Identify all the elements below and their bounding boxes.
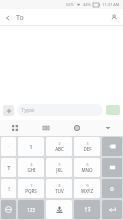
staticText: 9 <box>86 183 89 188</box>
button[interactable]: T <box>1 158 16 177</box>
staticText: 11:37 AM <box>102 2 120 7</box>
staticText: DEF <box>83 146 92 152</box>
staticText: PQRS <box>25 188 37 194</box>
button[interactable]: box <box>102 158 122 177</box>
staticText: 44% <box>83 2 91 7</box>
staticText: ! <box>8 185 10 193</box>
staticText: 4 <box>30 162 33 167</box>
staticText: 1 <box>29 143 33 151</box>
staticText: Type <box>21 106 35 114</box>
button[interactable]: 2 <box>46 137 72 156</box>
staticText: 8 <box>58 183 61 188</box>
button[interactable]: Settings <box>61 120 92 136</box>
button[interactable]: Collapse <box>92 120 123 136</box>
staticText: 0 <box>110 185 114 193</box>
button[interactable]: 4 <box>18 158 44 177</box>
button[interactable]: Add attachment <box>3 105 14 116</box>
staticText: JKL <box>56 167 63 173</box>
button[interactable]: Type <box>17 104 103 116</box>
staticText: MNO <box>81 167 93 173</box>
button[interactable]: del <box>102 137 122 156</box>
button[interactable]: 7 <box>18 179 44 198</box>
button[interactable]: Add contact <box>106 9 123 26</box>
staticText: 5 <box>58 162 61 167</box>
button[interactable]: ! <box>1 179 16 198</box>
staticText: 52% <box>66 2 74 7</box>
button[interactable]: 123 <box>18 200 44 219</box>
button[interactable]: 3 <box>74 137 100 156</box>
button[interactable]: 9 <box>74 179 100 198</box>
staticText: ABC <box>55 146 64 152</box>
staticText: To <box>16 13 24 23</box>
staticText: GHI <box>27 167 36 173</box>
staticText: 123 <box>27 207 35 213</box>
button[interactable]: 6 <box>74 158 100 177</box>
button[interactable]: 1 <box>18 137 44 156</box>
button[interactable]: enter <box>102 200 122 219</box>
button[interactable]: 5 <box>46 158 72 177</box>
staticText: 2 <box>58 141 61 146</box>
button[interactable]: Clipboard <box>30 120 61 136</box>
staticText: 7 <box>30 183 33 188</box>
button[interactable]: globe <box>1 200 16 219</box>
button[interactable]: 0 <box>102 179 122 198</box>
staticText: 3 <box>86 141 89 146</box>
button[interactable]: Apps <box>0 120 30 136</box>
staticText: WXYZ <box>81 188 93 194</box>
staticText: · <box>8 144 9 149</box>
button[interactable]: Back <box>0 10 16 26</box>
button[interactable]: 8 <box>46 179 72 198</box>
staticText: 6 <box>86 162 89 167</box>
staticText: TUV <box>55 188 64 194</box>
button[interactable]: cjk <box>74 200 100 219</box>
staticText: T <box>7 164 11 172</box>
button[interactable]: Send <box>106 105 120 115</box>
button[interactable]: mic <box>46 200 72 219</box>
